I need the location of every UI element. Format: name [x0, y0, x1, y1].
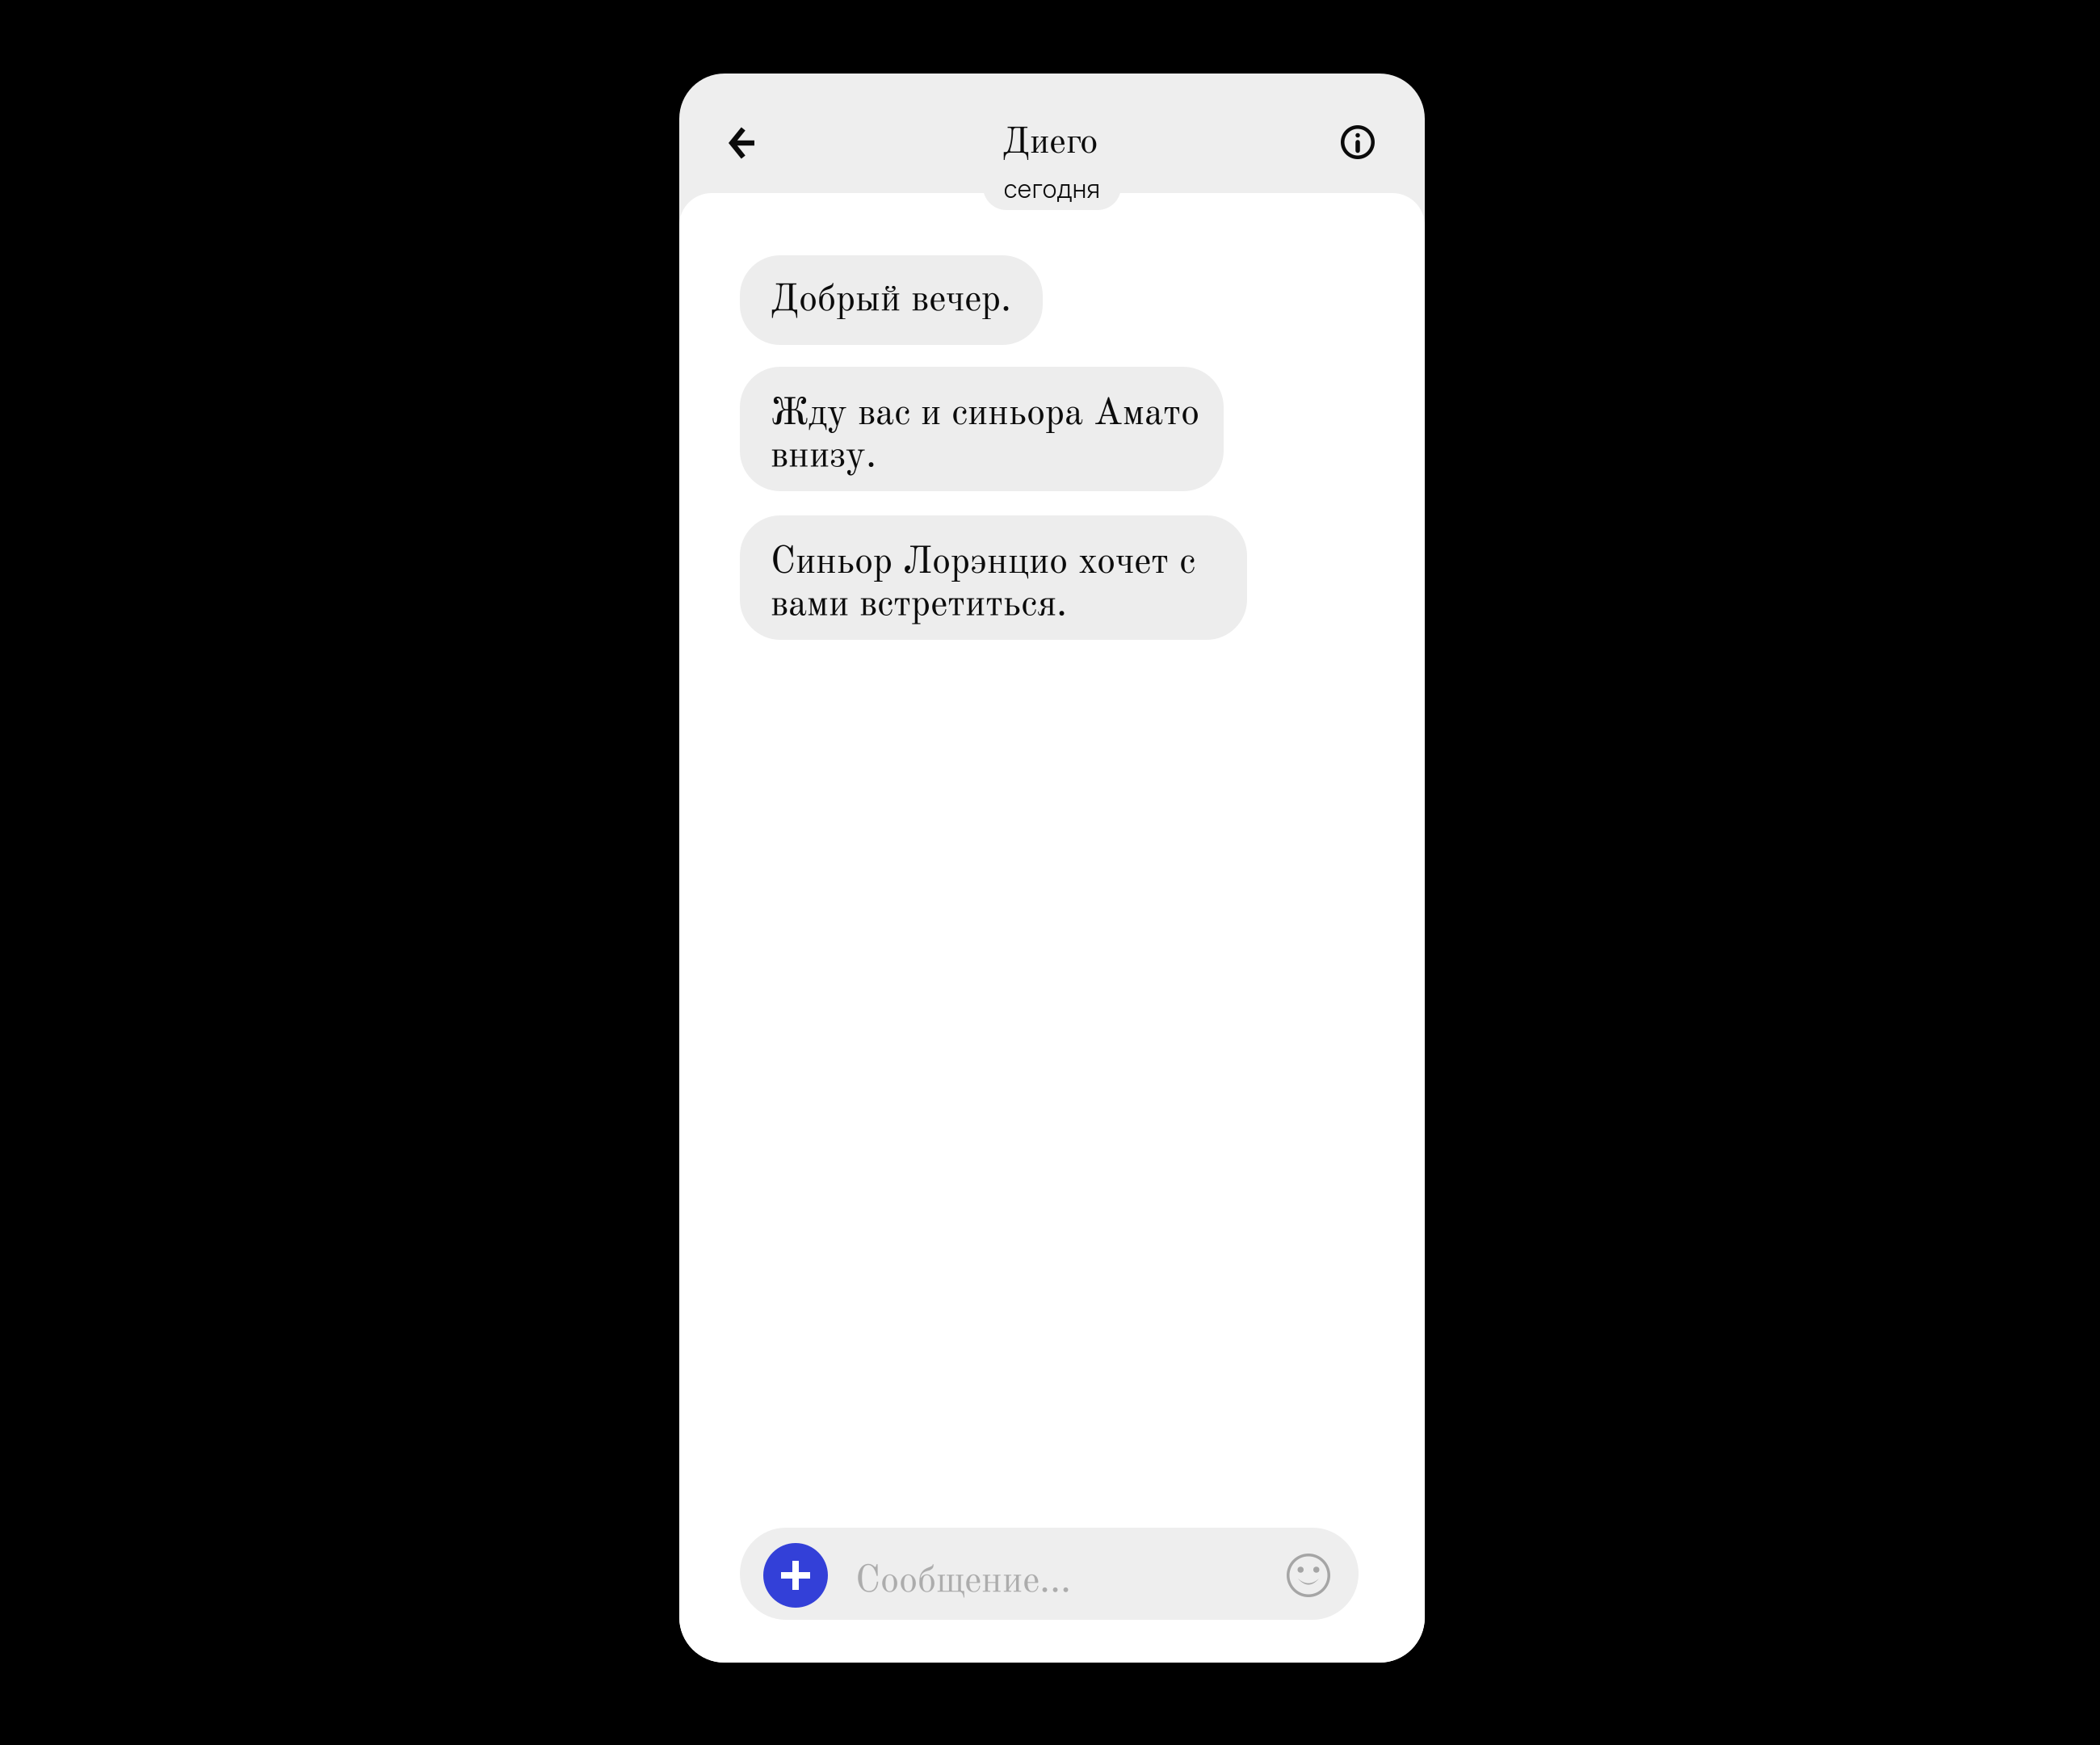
button[interactable]: Conversation details: [1317, 101, 1399, 183]
staticText: Диего: [1002, 125, 1098, 161]
staticText: Синьор Лорэнцио хочет с вами встретиться…: [771, 544, 1195, 624]
staticText: Сообщение...: [855, 1563, 1071, 1601]
button[interactable]: Back: [703, 102, 779, 184]
button[interactable]: Add attachment: [740, 1528, 828, 1620]
staticText: Жду вас и синьора Амато внизу.: [771, 395, 1199, 476]
staticText: Добрый вечер.: [771, 282, 1011, 319]
staticText: сегодня: [1004, 173, 1100, 204]
button[interactable]: Emoji: [1287, 1528, 1359, 1620]
